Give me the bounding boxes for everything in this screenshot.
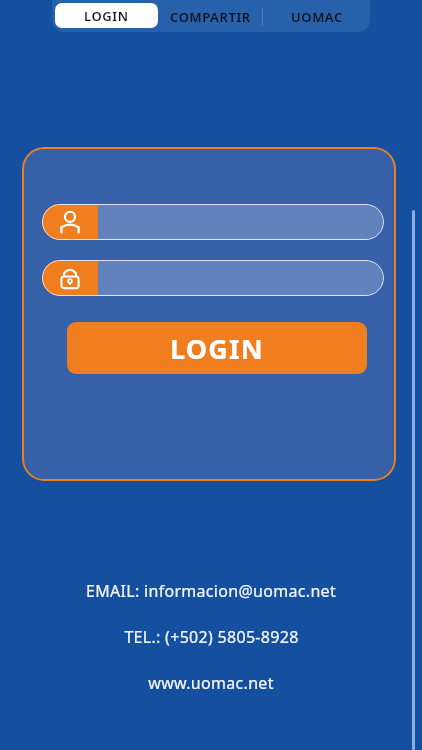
button[interactable]: Username	[42, 204, 384, 240]
staticText: LOGIN	[170, 330, 264, 367]
staticText: TEL.: (+502) 5805-8928	[124, 626, 299, 648]
button[interactable]: LOGIN	[55, 3, 158, 28]
button[interactable]: Password	[42, 260, 384, 296]
staticText: UOMAC	[291, 8, 343, 26]
button[interactable]: LOGIN	[67, 322, 367, 374]
button[interactable]: UOMAC	[263, 3, 370, 31]
button[interactable]: COMPARTIR	[158, 3, 262, 31]
staticText: EMAIL: informacion@uomac.net	[86, 580, 336, 602]
staticText: COMPARTIR	[170, 8, 251, 26]
staticText: www.uomac.net	[148, 672, 274, 694]
staticText: LOGIN	[84, 7, 129, 25]
